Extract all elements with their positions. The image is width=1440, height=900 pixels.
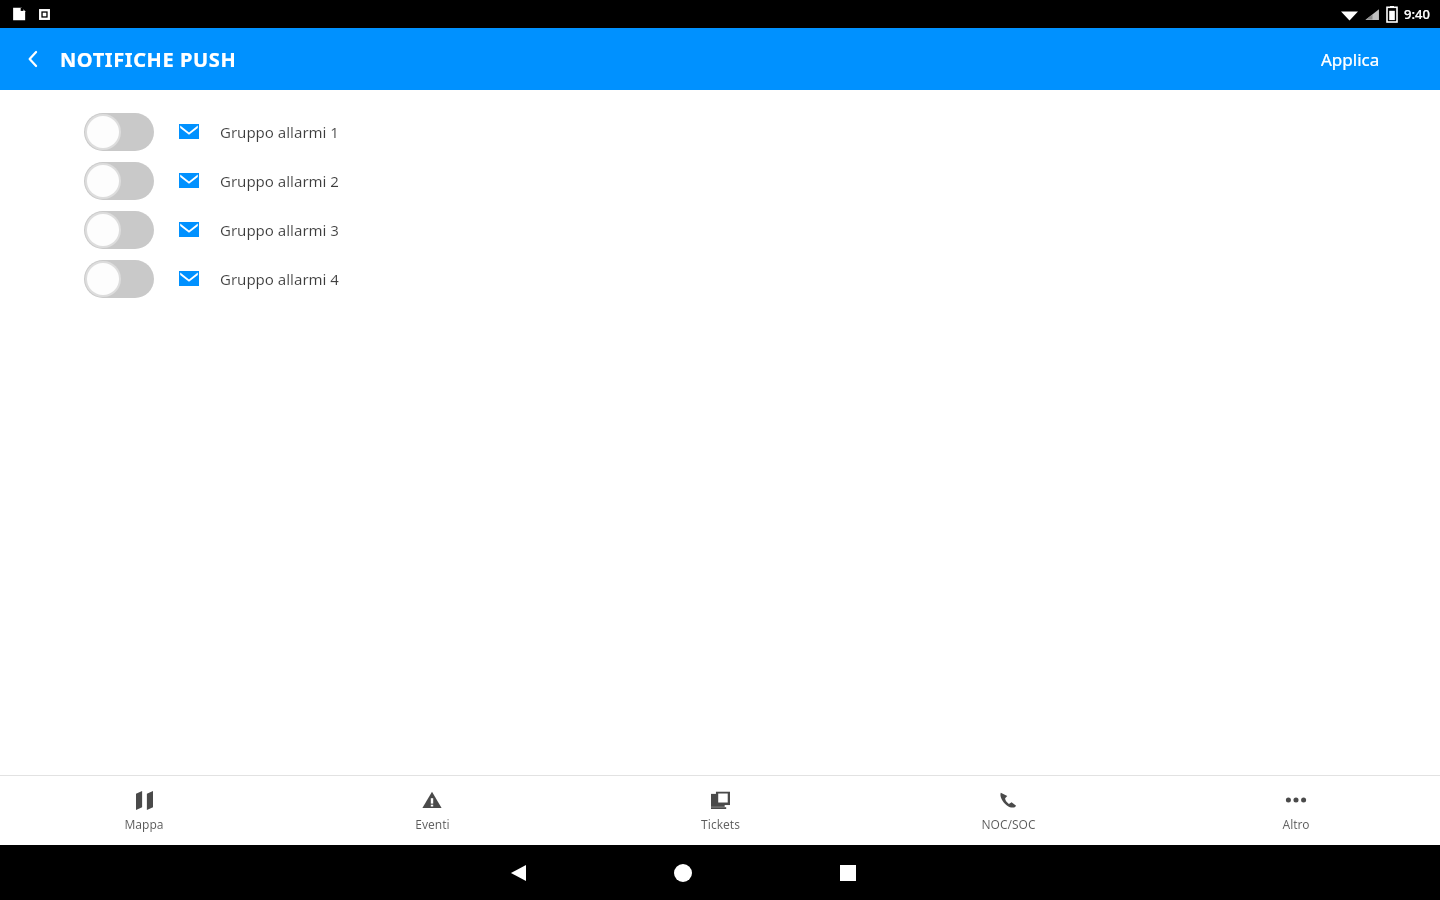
button[interactable]: Home <box>660 850 706 896</box>
button[interactable]: Back <box>20 42 46 76</box>
staticText: Altro <box>1282 816 1310 832</box>
staticText: NOC/SOC <box>981 816 1036 832</box>
button[interactable]: Recent apps <box>826 851 870 895</box>
button[interactable]: Toggle <box>0 112 1440 151</box>
staticText: Tickets <box>701 816 740 832</box>
button[interactable]: Toggle <box>0 161 1440 200</box>
staticText: Gruppo allarmi 4 <box>220 269 339 289</box>
staticText: Applica <box>1321 48 1380 71</box>
button[interactable]: NOC/SOC <box>864 776 1152 845</box>
button[interactable]: Tickets <box>576 776 864 845</box>
button[interactable]: Applica <box>1311 40 1390 79</box>
staticText: Eventi <box>415 816 450 832</box>
staticText: Gruppo allarmi 3 <box>220 220 339 240</box>
staticText: Mappa <box>124 816 164 832</box>
button[interactable]: Toggle <box>0 259 1440 298</box>
button[interactable]: Toggle <box>84 260 154 298</box>
staticText: Gruppo allarmi 2 <box>220 171 339 191</box>
button[interactable]: Altro <box>1152 776 1440 845</box>
button[interactable]: Eventi <box>288 776 576 845</box>
button[interactable]: Toggle <box>84 211 154 249</box>
button[interactable]: Back <box>496 850 540 896</box>
button[interactable]: Mappa <box>0 776 288 845</box>
button[interactable]: Toggle <box>84 162 154 200</box>
button[interactable]: Toggle <box>84 113 154 151</box>
staticText: NOTIFICHE PUSH <box>60 46 237 73</box>
button[interactable]: Toggle <box>0 210 1440 249</box>
staticText: Gruppo allarmi 1 <box>220 122 339 142</box>
staticText: 9:40 <box>1404 5 1430 23</box>
